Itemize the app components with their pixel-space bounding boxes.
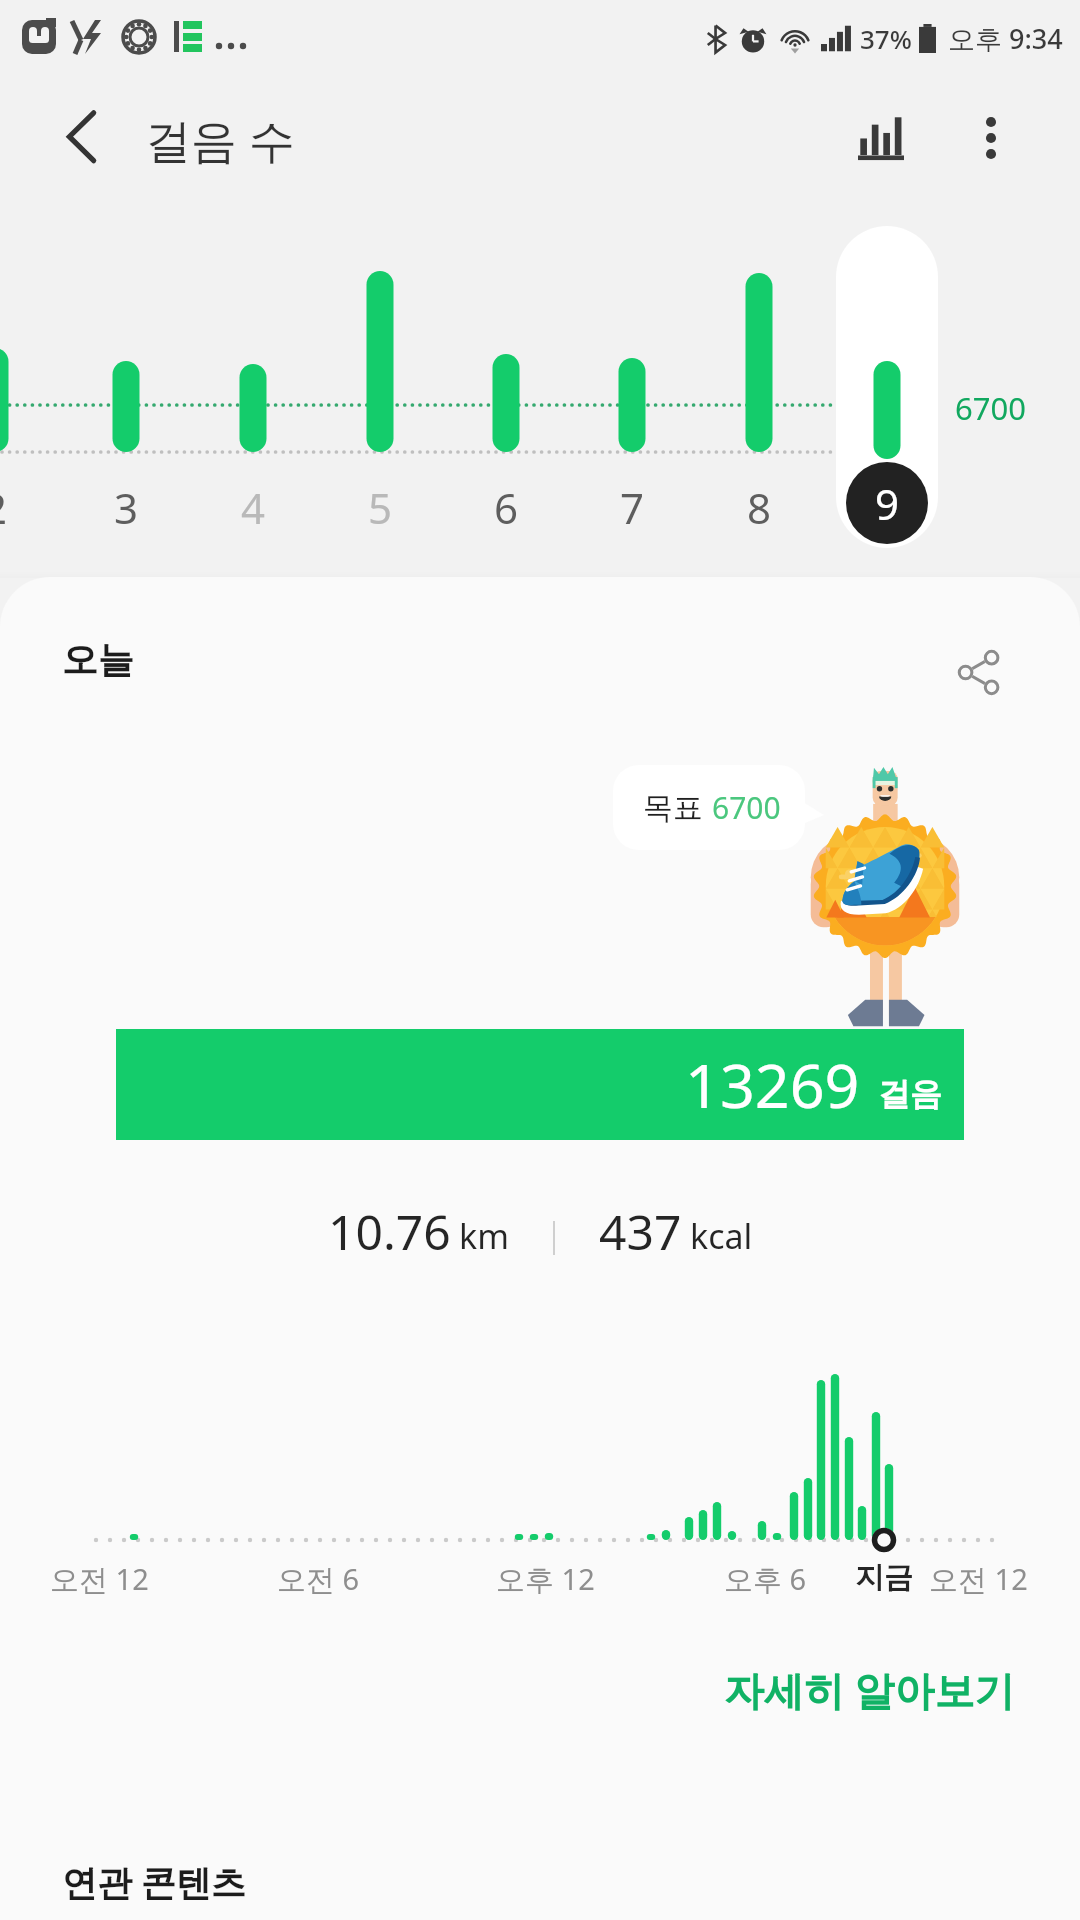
staticText: 6700 bbox=[955, 387, 1026, 429]
staticText: 연관 콘텐츠 bbox=[62, 1858, 247, 1906]
staticText: 오전 6 bbox=[277, 1559, 360, 1599]
staticText: 자세히 알아보기 bbox=[724, 1662, 1015, 1717]
button[interactable]: 6 bbox=[471, 230, 541, 536]
staticText: 37% bbox=[860, 21, 912, 56]
button[interactable]: 7 bbox=[597, 230, 667, 536]
staticText: 목표 bbox=[643, 789, 703, 827]
staticText: 오전 12 bbox=[929, 1559, 1028, 1599]
staticText: 7 bbox=[620, 479, 645, 536]
staticText: 4 bbox=[241, 479, 266, 536]
staticText: 걸음 bbox=[878, 1074, 942, 1114]
button[interactable]: More options bbox=[955, 102, 1027, 174]
staticText: 오늘 bbox=[62, 637, 134, 682]
button[interactable]: 3 bbox=[91, 230, 161, 536]
staticText: 5 bbox=[368, 479, 393, 536]
staticText: 437 bbox=[599, 1199, 682, 1264]
button[interactable]: Back bbox=[42, 101, 118, 177]
staticText: km bbox=[459, 1213, 509, 1259]
staticText: 3 bbox=[114, 479, 139, 536]
staticText: 2 bbox=[0, 479, 8, 536]
staticText: 오후 6 bbox=[724, 1559, 807, 1599]
button[interactable]: Chart bbox=[845, 102, 917, 174]
staticText: 9 bbox=[875, 475, 900, 532]
staticText: 오전 12 bbox=[50, 1559, 149, 1599]
button[interactable]: 4 bbox=[218, 230, 288, 536]
staticText: kcal bbox=[690, 1213, 753, 1259]
staticText: 지금 bbox=[855, 1559, 913, 1596]
button[interactable]: 2 bbox=[0, 230, 30, 536]
staticText: 오후 9:34 bbox=[948, 20, 1063, 57]
staticText: 6700 bbox=[712, 787, 781, 828]
staticText: 6 bbox=[494, 479, 519, 536]
staticText: 13269 bbox=[685, 1043, 860, 1126]
staticText: 10.76 bbox=[328, 1199, 451, 1264]
staticText: 오후 12 bbox=[496, 1559, 595, 1599]
button[interactable]: 5 bbox=[345, 230, 415, 536]
staticText: 걸음 수 bbox=[145, 108, 295, 171]
button[interactable]: Share bbox=[936, 629, 1022, 715]
staticText: 8 bbox=[747, 479, 772, 536]
button[interactable]: 자세히 알아보기 bbox=[704, 1646, 1035, 1733]
button[interactable]: 13269 bbox=[116, 1029, 964, 1140]
button[interactable]: Day 9 selected bbox=[836, 226, 938, 548]
button[interactable]: 8 bbox=[724, 230, 794, 536]
